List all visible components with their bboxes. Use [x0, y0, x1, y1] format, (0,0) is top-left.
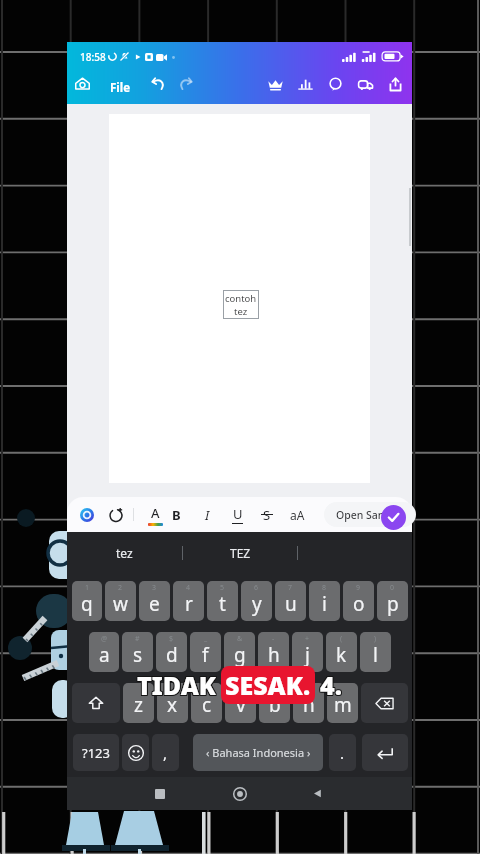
staticText: TIDAK [138, 669, 217, 703]
staticText: + [305, 634, 310, 644]
button[interactable]: e [139, 581, 170, 621]
staticText: tez [116, 545, 133, 561]
button[interactable]: r [173, 581, 204, 621]
staticText: h [268, 642, 280, 668]
staticText: 4. [321, 668, 343, 702]
button[interactable]: k [326, 632, 357, 672]
button[interactable]: , [152, 734, 179, 771]
button[interactable]: b [259, 683, 290, 723]
staticText: r [185, 591, 193, 617]
button[interactable]: ?123 [73, 734, 119, 771]
staticText: # [135, 634, 140, 644]
button[interactable]: o [343, 581, 374, 621]
staticText: t [219, 591, 226, 617]
button[interactable]: Text color [146, 497, 164, 532]
button[interactable]: ‹ Bahasa Indonesia › [193, 734, 323, 771]
staticText: I [205, 506, 210, 524]
staticText: d [166, 642, 178, 668]
button[interactable]: Backspace [361, 683, 408, 723]
button[interactable]: B [167, 497, 185, 532]
button[interactable]: File [107, 72, 133, 104]
button[interactable]: AI assistant [79, 497, 95, 532]
staticText: TIDAK [138, 667, 217, 701]
staticText: 4. [319, 668, 341, 702]
button[interactable]: u [275, 581, 306, 621]
staticText: $ [169, 634, 174, 644]
button[interactable]: d [156, 632, 187, 672]
button[interactable]: Share [383, 72, 407, 96]
button[interactable]: TEZ [183, 532, 297, 573]
staticText: 4. [320, 669, 342, 703]
button[interactable]: Open Sans [324, 502, 416, 527]
button[interactable]: Emoji [122, 734, 149, 771]
button[interactable]: z [123, 683, 154, 723]
staticText: 4. [320, 667, 342, 701]
staticText: , [163, 743, 168, 763]
staticText: i [322, 591, 327, 617]
staticText: @ [101, 634, 108, 644]
staticText: U [233, 505, 243, 523]
staticText: s [133, 642, 143, 668]
button[interactable]: n [293, 683, 324, 723]
button[interactable]: Back [302, 777, 332, 810]
button[interactable]: Comment [323, 72, 347, 96]
button[interactable]: Done [381, 505, 406, 530]
button[interactable]: p [377, 581, 408, 621]
staticText: 4. [320, 668, 342, 702]
button[interactable]: q [72, 581, 102, 621]
button[interactable]: Redo [174, 72, 198, 96]
button[interactable]: tez [67, 532, 182, 573]
staticText: f [202, 642, 209, 668]
button[interactable]: Home [225, 777, 255, 810]
button[interactable]: c [191, 683, 222, 723]
button[interactable]: v [225, 683, 256, 723]
button[interactable]: h [258, 632, 289, 672]
staticText: TEZ [230, 545, 251, 561]
button[interactable]: s [122, 632, 153, 672]
staticText: k [336, 642, 347, 668]
button[interactable]: f [190, 632, 221, 672]
staticText: TIDAK [137, 667, 216, 701]
button[interactable]: g [224, 632, 255, 672]
staticText: l [373, 642, 378, 668]
button[interactable]: Undo [146, 72, 170, 96]
staticText: x [167, 692, 178, 718]
staticText: aA [290, 507, 305, 523]
button[interactable]: Home [70, 72, 94, 96]
staticText: 4. [321, 667, 343, 701]
staticText: - [272, 634, 275, 644]
button[interactable]: w [105, 581, 136, 621]
button[interactable]: I [198, 497, 216, 532]
staticText: 7 [288, 583, 293, 593]
button[interactable]: Shift [72, 683, 120, 723]
button[interactable]: Strikethrough [258, 497, 276, 532]
button[interactable]: t [207, 581, 238, 621]
staticText: TIDAK [136, 669, 215, 703]
button[interactable]: l [360, 632, 391, 672]
button[interactable]: i [309, 581, 340, 621]
button[interactable]: j [292, 632, 323, 672]
button[interactable]: Premium [263, 72, 287, 96]
staticText: TIDAK [136, 667, 215, 701]
button[interactable]: y [241, 581, 272, 621]
staticText: c [202, 692, 212, 718]
staticText: contoh [225, 292, 257, 305]
staticText: ) [374, 634, 377, 644]
staticText: 5 [220, 583, 225, 593]
staticText: SESAK. [225, 668, 311, 702]
button[interactable]: Present [353, 72, 377, 96]
button[interactable]: Enter [362, 734, 408, 771]
button[interactable]: . [329, 734, 356, 771]
button[interactable]: a [89, 632, 119, 672]
button[interactable]: Rotate [108, 497, 124, 532]
button[interactable]: aA [286, 497, 308, 532]
staticText: 0 [390, 583, 395, 593]
button[interactable]: m [327, 683, 358, 723]
button[interactable]: Underline [228, 497, 246, 532]
staticText: _ [204, 634, 208, 644]
staticText: b [269, 692, 281, 718]
button[interactable]: x [157, 683, 188, 723]
button[interactable]: Chart [293, 72, 317, 96]
button[interactable]: Recents [145, 777, 175, 810]
